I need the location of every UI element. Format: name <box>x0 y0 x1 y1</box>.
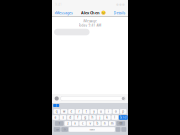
staticText: q <box>56 109 58 113</box>
button[interactable]: s <box>60 115 66 120</box>
staticText: ⚇ <box>64 128 66 131</box>
button[interactable]: y <box>90 109 97 114</box>
button[interactable]: z <box>64 121 71 126</box>
staticText: t <box>86 109 87 113</box>
button[interactable]: ⇧ <box>55 121 64 126</box>
staticText: Alex Chen 😊 <box>81 10 106 15</box>
staticText: Today 9:41 AM <box>78 23 101 27</box>
staticText: x <box>74 121 76 125</box>
staticText: k <box>106 115 108 119</box>
button[interactable]: o <box>113 109 119 114</box>
button[interactable]: t <box>83 109 90 114</box>
button[interactable]: Send <box>119 115 128 120</box>
staticText: w <box>63 109 65 113</box>
button[interactable]: c <box>79 121 86 126</box>
button[interactable]: g <box>82 115 88 120</box>
button[interactable]: r <box>76 109 82 114</box>
button[interactable]: ‹ <box>54 10 73 16</box>
button[interactable]: Details <box>114 10 126 15</box>
button[interactable]: space <box>69 127 115 132</box>
staticText: ⇧ <box>58 122 60 125</box>
button[interactable]: Camera <box>55 96 59 101</box>
staticText: c <box>82 121 83 125</box>
staticText: o <box>115 109 117 113</box>
staticText: Details <box>114 10 126 15</box>
staticText: p <box>122 109 124 113</box>
button[interactable]: i <box>105 109 112 114</box>
staticText: s <box>62 115 63 119</box>
button[interactable]: f <box>74 115 81 120</box>
button[interactable]: ⚇ <box>61 127 68 132</box>
staticText: b <box>96 121 98 125</box>
button[interactable]: j <box>97 115 103 120</box>
staticText: g <box>84 115 86 119</box>
staticText: iMessage <box>83 19 97 23</box>
staticText: m <box>111 121 114 125</box>
staticText: space <box>89 128 94 131</box>
staticText: e <box>70 109 72 113</box>
staticText: l <box>114 115 115 119</box>
button[interactable] <box>116 127 120 132</box>
staticText: u <box>100 109 102 113</box>
staticText: d <box>69 115 71 119</box>
button[interactable]: h <box>89 115 96 120</box>
button[interactable]: d <box>67 115 74 120</box>
staticText: h <box>91 115 93 119</box>
staticText: ⌫ <box>119 122 123 125</box>
button[interactable]: u <box>98 109 104 114</box>
staticText: 9:41 <box>55 2 62 7</box>
button[interactable]: I <box>53 104 59 107</box>
button[interactable]: ⌫ <box>116 121 125 126</box>
button[interactable]: b <box>94 121 101 126</box>
staticText: j <box>99 115 100 119</box>
button[interactable]: x <box>72 121 78 126</box>
staticText: y <box>93 109 94 113</box>
staticText: Messages <box>56 10 73 15</box>
button[interactable]: v <box>87 121 93 126</box>
button[interactable]: w <box>61 109 67 114</box>
staticText: f <box>77 115 78 119</box>
button[interactable] <box>121 127 126 132</box>
button[interactable]: 123 <box>54 127 60 132</box>
staticText: z <box>67 121 68 125</box>
button[interactable]: l <box>111 115 118 120</box>
staticText: r <box>78 109 79 113</box>
button[interactable]: p <box>120 109 126 114</box>
staticText: n <box>104 121 106 125</box>
staticText: ‹ <box>54 10 55 16</box>
button[interactable]: k <box>104 115 111 120</box>
button[interactable]: n <box>101 121 108 126</box>
button[interactable]: a <box>52 115 59 120</box>
button[interactable]: e <box>68 109 75 114</box>
button[interactable]: q <box>53 109 60 114</box>
button[interactable]: m <box>109 121 115 126</box>
staticText: ●●● <box>116 3 125 6</box>
staticText: a <box>54 115 56 119</box>
staticText: i <box>108 109 109 113</box>
staticText: Send <box>120 116 127 119</box>
staticText: 123 <box>56 128 59 131</box>
